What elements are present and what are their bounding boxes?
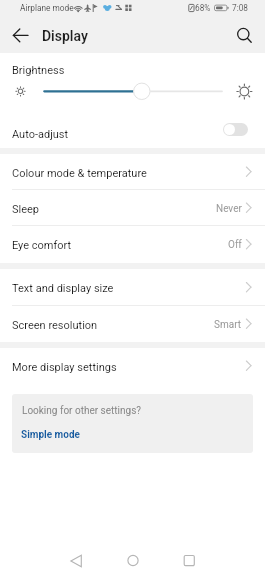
staticText: Eye comfort [12, 239, 72, 252]
staticText: 7:08 [232, 3, 248, 13]
button[interactable]: Recent apps [168, 539, 210, 575]
button[interactable] [0, 306, 265, 342]
staticText: 68% [195, 3, 211, 13]
button[interactable] [0, 269, 265, 306]
staticText: Airplane mode [20, 3, 74, 13]
button[interactable] [0, 154, 265, 190]
staticText: Display [42, 28, 88, 44]
staticText: Off [228, 239, 242, 251]
button[interactable] [0, 348, 265, 384]
staticText: Text and display size [12, 282, 114, 295]
button[interactable] [21, 426, 85, 442]
staticText: Screen resolution [12, 319, 98, 332]
staticText: Never [216, 203, 242, 215]
staticText: Colour mode & temperature [12, 167, 147, 180]
staticText: Auto-adjust [12, 128, 69, 141]
staticText: Smart [214, 319, 242, 331]
button[interactable] [0, 226, 265, 263]
button[interactable] [0, 190, 265, 226]
staticText: Looking for other settings? [22, 405, 142, 417]
button[interactable]: Search [227, 16, 265, 53]
staticText: Sleep [12, 203, 40, 216]
staticText: Brightness [12, 64, 65, 77]
button[interactable]: Back [55, 539, 97, 575]
staticText: More display settings [12, 361, 117, 374]
button[interactable]: Home [112, 539, 154, 575]
button[interactable] [0, 110, 265, 148]
staticText: Simple mode [21, 429, 80, 441]
button[interactable]: Back [3, 16, 39, 53]
